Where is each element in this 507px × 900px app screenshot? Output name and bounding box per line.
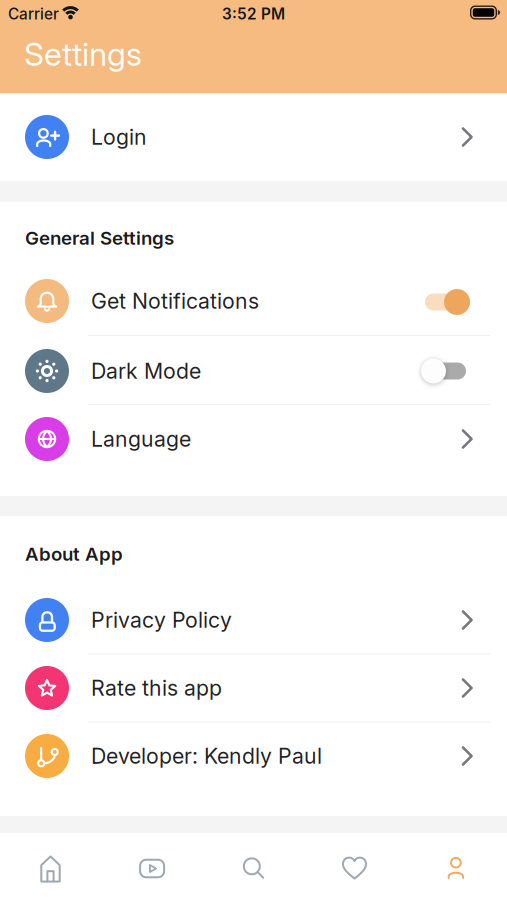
- button[interactable]: Language: [0, 405, 507, 473]
- staticText: 3:52 PM: [222, 5, 285, 23]
- staticText: Dark Mode: [91, 358, 201, 384]
- button[interactable]: Login: [0, 93, 507, 181]
- button[interactable]: [0, 835, 101, 900]
- staticText: Get Notifications: [91, 288, 259, 314]
- staticText: About App: [25, 543, 123, 565]
- button[interactable]: [424, 286, 476, 318]
- staticText: Carrier: [8, 5, 59, 23]
- staticText: Language: [91, 426, 191, 452]
- staticText: Login: [91, 124, 147, 150]
- staticText: Rate this app: [91, 675, 222, 701]
- button[interactable]: [406, 834, 507, 900]
- staticText: General Settings: [25, 227, 174, 249]
- button[interactable]: [102, 835, 203, 900]
- button[interactable]: [203, 834, 304, 900]
- button[interactable]: Rate this app: [0, 654, 507, 722]
- button[interactable]: [423, 355, 475, 387]
- button[interactable]: Developer: Kendly Paul: [0, 722, 507, 790]
- button[interactable]: [304, 834, 405, 900]
- staticText: Privacy Policy: [91, 607, 232, 633]
- staticText: Developer: Kendly Paul: [91, 743, 322, 769]
- button[interactable]: Privacy Policy: [0, 586, 507, 654]
- staticText: Settings: [24, 35, 142, 73]
